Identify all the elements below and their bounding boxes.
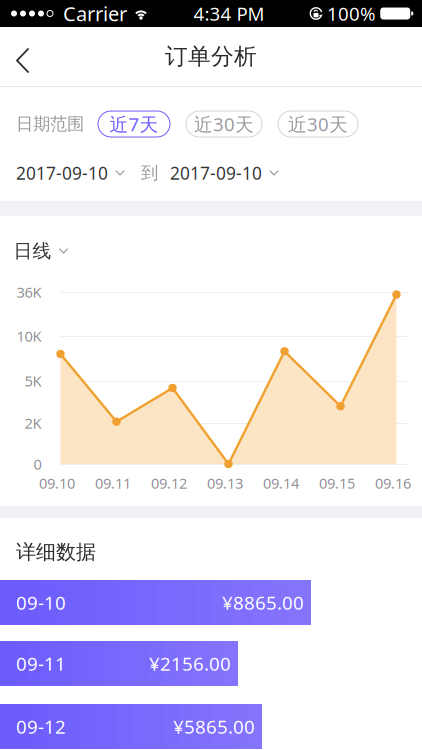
button[interactable]: 近30天 xyxy=(186,111,262,137)
staticText: 09.15 xyxy=(319,473,355,493)
staticText: ¥5865.00 xyxy=(173,714,255,739)
staticText: 日期范围 xyxy=(16,113,84,135)
staticText: 日线 xyxy=(13,239,51,262)
staticText: 09.10 xyxy=(39,473,75,493)
staticText: 2017-09-10 xyxy=(170,161,262,184)
staticText: 09-10 xyxy=(16,590,66,615)
staticText: 近7天 xyxy=(109,112,158,136)
button[interactable]: 近30天 xyxy=(278,111,358,137)
button[interactable]: 近7天 xyxy=(98,111,170,137)
staticText: 100% xyxy=(327,1,376,26)
button[interactable]: 2017-09-10 xyxy=(16,161,125,184)
button[interactable]: 2017-09-10 xyxy=(170,161,279,184)
button[interactable]: Back xyxy=(0,28,44,84)
staticText: 09.16 xyxy=(375,473,411,493)
staticText: 09-11 xyxy=(16,651,66,676)
staticText: 0 xyxy=(33,454,41,474)
staticText: 详细数据 xyxy=(16,540,96,564)
staticText: 09.11 xyxy=(95,473,131,493)
staticText: 订单分析 xyxy=(165,43,257,70)
staticText: 近30天 xyxy=(288,112,348,136)
staticText: 09.13 xyxy=(207,473,243,493)
staticText: 36K xyxy=(16,282,41,302)
staticText: 09-12 xyxy=(16,714,66,739)
button[interactable]: 日线 xyxy=(3,229,68,272)
staticText: 2017-09-10 xyxy=(16,161,108,184)
staticText: 5K xyxy=(24,371,41,391)
staticText: 2K xyxy=(24,413,41,433)
staticText: 到 xyxy=(141,162,158,184)
staticText: 近30天 xyxy=(194,112,254,136)
staticText: Carrier xyxy=(63,0,127,27)
staticText: 10K xyxy=(16,326,41,346)
staticText: 4:34 PM xyxy=(193,1,264,26)
staticText: 09.12 xyxy=(151,473,187,493)
staticText: 09.14 xyxy=(263,473,299,493)
staticText: ¥8865.00 xyxy=(222,590,304,615)
staticText: ¥2156.00 xyxy=(149,651,231,676)
